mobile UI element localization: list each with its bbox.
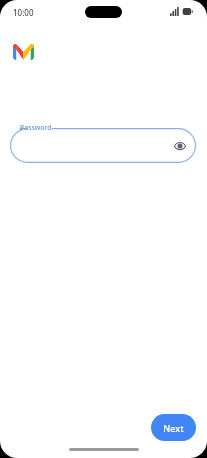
button[interactable]: Next [151, 414, 196, 441]
staticText: Password [20, 123, 52, 133]
button[interactable]: Password [10, 128, 196, 163]
staticText: Next [163, 422, 184, 434]
button[interactable]: Show password [171, 137, 189, 155]
staticText: 10:00 [13, 7, 34, 18]
